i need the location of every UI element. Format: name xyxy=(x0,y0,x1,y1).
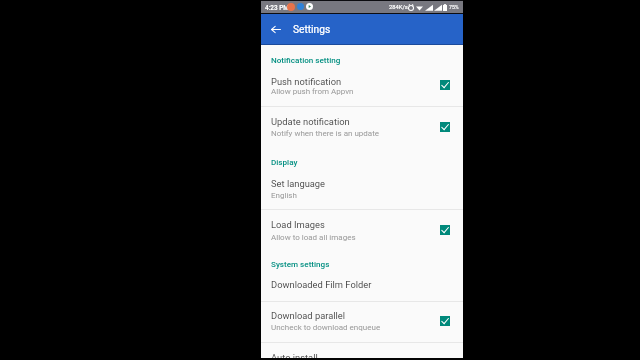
button[interactable]: Toggle Download parallel xyxy=(437,313,453,329)
staticText: Load Images xyxy=(271,219,426,230)
staticText: Uncheck to download enqueue xyxy=(271,323,436,332)
staticText: Notification setting xyxy=(271,55,341,64)
staticText: Downloaded Film Folder xyxy=(271,279,426,290)
button[interactable]: Download parallel xyxy=(261,302,463,342)
staticText: Notify when there is an update xyxy=(271,129,436,138)
staticText: Settings xyxy=(293,24,331,36)
button[interactable]: Update notification xyxy=(261,107,463,148)
staticText: English xyxy=(271,191,436,200)
staticText: Download parallel xyxy=(271,310,426,321)
staticText: Update notification xyxy=(271,116,426,127)
button[interactable]: Downloaded Film Folder xyxy=(261,271,463,301)
staticText: Allow push from Appvn xyxy=(271,87,436,96)
staticText: 75% xyxy=(449,4,459,10)
staticText: System settings xyxy=(271,259,330,268)
staticText: Allow to load all images xyxy=(271,233,436,242)
button[interactable]: Set language xyxy=(261,169,463,209)
button[interactable]: Push notification xyxy=(261,66,463,106)
staticText: Auto install xyxy=(271,352,426,360)
staticText: Set language xyxy=(271,178,426,189)
button[interactable]: Auto install xyxy=(261,343,463,360)
button[interactable]: Load Images xyxy=(261,210,463,251)
button[interactable]: Toggle Load Images xyxy=(437,222,453,238)
staticText: Push notification xyxy=(271,76,426,87)
staticText: 4:23 PM xyxy=(265,4,289,12)
button[interactable]: Back xyxy=(265,14,286,45)
staticText: Display xyxy=(271,157,298,166)
staticText: 284K/s xyxy=(389,4,408,11)
button[interactable]: Toggle Push notification xyxy=(437,77,453,93)
button[interactable]: Toggle Update notification xyxy=(437,119,453,135)
